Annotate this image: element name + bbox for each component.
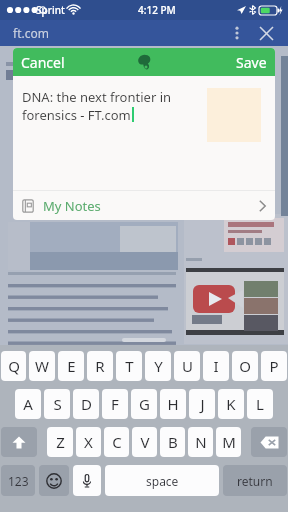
- staticText: Save: [236, 53, 267, 72]
- button[interactable]: My Notes: [13, 191, 275, 220]
- button[interactable]: Backspace: [251, 427, 287, 457]
- staticText: A: [23, 394, 33, 414]
- button[interactable]: B: [160, 427, 185, 457]
- staticText: J: [200, 394, 205, 414]
- staticText: K: [226, 394, 236, 414]
- staticText: P: [269, 356, 279, 376]
- staticText: Y: [154, 356, 163, 376]
- button[interactable]: Emoji: [39, 465, 69, 496]
- button[interactable]: V: [132, 427, 157, 457]
- staticText: C: [112, 432, 122, 452]
- staticText: E: [67, 356, 76, 376]
- staticText: B: [168, 432, 178, 452]
- staticText: N: [195, 432, 207, 452]
- button[interactable]: W: [29, 351, 55, 381]
- button[interactable]: F: [102, 389, 128, 419]
- staticText: space: [146, 473, 179, 489]
- button[interactable]: Shift: [1, 427, 37, 457]
- staticText: Cancel: [21, 53, 65, 72]
- button[interactable]: Z: [47, 427, 73, 457]
- button[interactable]: S: [44, 389, 70, 419]
- staticText: F: [111, 394, 119, 414]
- button[interactable]: C: [104, 427, 129, 457]
- button[interactable]: A: [15, 389, 41, 419]
- button[interactable]: K: [218, 389, 244, 419]
- staticText: forensics - FT.com: [22, 106, 131, 124]
- button[interactable]: space: [105, 465, 219, 496]
- staticText: G: [139, 394, 150, 414]
- staticText: D: [81, 394, 92, 414]
- button[interactable]: M: [216, 427, 241, 457]
- staticText: I: [213, 356, 219, 376]
- staticText: Z: [56, 432, 65, 452]
- button[interactable]: Close: [254, 21, 278, 45]
- button[interactable]: More options: [226, 22, 248, 44]
- staticText: V: [140, 432, 150, 452]
- button[interactable]: U: [174, 351, 200, 381]
- button[interactable]: Cancel: [21, 48, 65, 76]
- staticText: W: [35, 356, 49, 376]
- staticText: return: [237, 473, 273, 489]
- staticText: U: [182, 356, 193, 376]
- button[interactable]: Y: [145, 351, 171, 381]
- button[interactable]: G: [131, 389, 157, 419]
- button[interactable]: L: [247, 389, 273, 419]
- staticText: M: [222, 432, 236, 452]
- staticText: R: [95, 356, 105, 376]
- staticText: T: [125, 356, 134, 376]
- button[interactable]: Save: [236, 48, 267, 76]
- button[interactable]: return: [223, 465, 287, 496]
- button[interactable]: N: [188, 427, 213, 457]
- button[interactable]: I: [203, 351, 229, 381]
- button[interactable]: H: [160, 389, 186, 419]
- button[interactable]: Dictate: [73, 465, 101, 496]
- staticText: 4:12 PM: [138, 3, 176, 17]
- staticText: H: [167, 394, 179, 414]
- staticText: DNA: the next frontier in: [22, 88, 172, 106]
- button[interactable]: X: [76, 427, 101, 457]
- button[interactable]: E: [58, 351, 84, 381]
- button[interactable]: O: [232, 351, 258, 381]
- staticText: X: [84, 432, 93, 452]
- button[interactable]: D: [73, 389, 99, 419]
- staticText: ft.com: [13, 25, 49, 41]
- staticText: 123: [8, 473, 29, 489]
- button[interactable]: P: [261, 351, 287, 381]
- button[interactable]: T: [116, 351, 142, 381]
- button[interactable]: J: [189, 389, 215, 419]
- staticText: Sprint: [36, 3, 65, 17]
- staticText: My Notes: [43, 197, 101, 215]
- button[interactable]: Q: [1, 351, 26, 381]
- staticText: L: [256, 394, 264, 414]
- staticText: O: [239, 356, 251, 376]
- button[interactable]: 123: [1, 465, 35, 496]
- staticText: S: [53, 394, 62, 414]
- staticText: Q: [8, 356, 20, 376]
- button[interactable]: R: [87, 351, 113, 381]
